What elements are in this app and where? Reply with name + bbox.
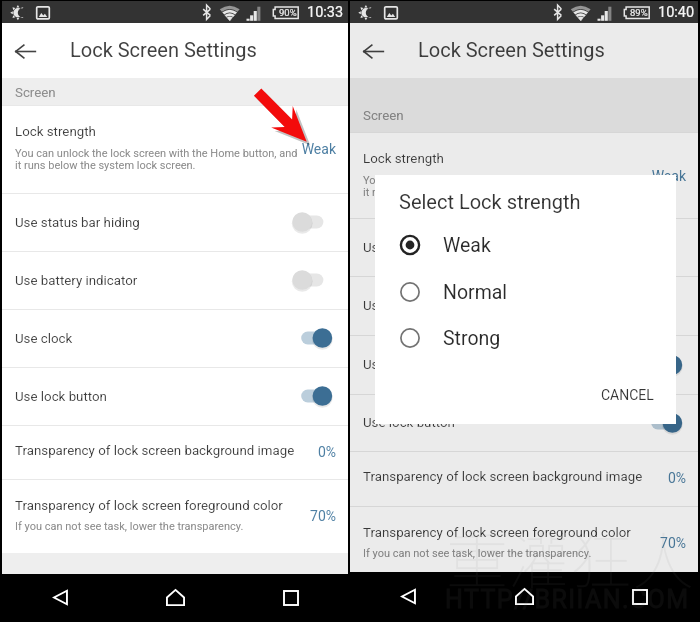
staticText: Use clock [15,331,73,347]
button[interactable]: Weak [385,227,665,263]
button[interactable] [2,367,348,425]
button[interactable] [2,479,348,553]
staticText: Normal [443,281,508,304]
staticText: Use status bar hiding [15,215,140,231]
button[interactable] [350,451,698,506]
staticText: CANCEL [601,387,654,403]
staticText: Weak [268,141,336,157]
button[interactable]: Toggle off [648,293,692,319]
button[interactable] [350,394,698,451]
staticText: Transparency of lock screen foreground c… [363,525,631,541]
staticText: 70% [268,508,336,524]
staticText: 重灌狂人 [446,512,695,602]
staticText: Lock strength [363,151,444,167]
button[interactable] [350,276,698,335]
staticText: If you can not see task, lower the trans… [363,547,592,560]
button[interactable]: Toggle on [298,383,342,409]
button[interactable] [2,309,348,367]
button[interactable] [350,218,698,276]
button[interactable] [350,335,698,394]
staticText: 70% [618,535,686,551]
button[interactable]: Toggle on [648,410,692,436]
staticText: If you can not see task, lower the trans… [15,520,244,533]
button[interactable]: CANCEL [601,387,654,403]
staticText: Lock Screen Settings [70,38,257,61]
button[interactable] [2,193,348,251]
staticText: Use clock [363,357,421,373]
staticText: You can unlock the lock screen with the … [363,174,646,187]
staticText: it runs below the system lock screen. [363,186,544,199]
staticText: Transparency of lock screen foreground c… [15,498,283,514]
staticText: HTTP//BRIIAN.COM [445,585,690,614]
button[interactable]: Strong [385,320,665,356]
button[interactable]: Navigate up [358,36,388,66]
staticText: 0% [268,444,336,460]
staticText: Use battery indicator [15,273,138,289]
button[interactable]: Toggle on [648,352,692,378]
staticText: Use lock button [363,415,455,431]
button[interactable] [350,506,698,572]
button[interactable]: Back [2,574,118,621]
button[interactable]: Toggle off [648,234,692,260]
button[interactable]: Navigate up [10,36,40,66]
button[interactable]: Toggle off [298,209,342,235]
button[interactable] [2,425,348,479]
staticText: it runs below the system lock screen. [15,159,196,172]
staticText: 90% [279,7,297,18]
staticText: Use battery indicator [363,298,486,314]
staticText: Strong [443,327,501,350]
button[interactable]: Toggle off [298,267,342,293]
staticText: 89% [630,7,648,18]
staticText: 0% [618,470,686,486]
staticText: Lock Screen Settings [418,38,605,61]
staticText: Use lock button [15,389,107,405]
staticText: 10:33 [307,4,344,21]
button[interactable]: Home [118,574,233,621]
button[interactable]: Recent apps [582,572,698,621]
staticText: Use status bar hiding [363,240,488,256]
staticText: Weak [618,168,686,184]
staticText: Weak [443,234,491,257]
staticText: Select Lock strength [399,190,581,213]
button[interactable]: Toggle on [298,325,342,351]
button[interactable]: Recent apps [233,574,348,621]
staticText: Screen [363,108,404,124]
button[interactable] [2,251,348,309]
staticText: You can unlock the lock screen with the … [15,147,298,160]
button[interactable] [350,133,698,218]
staticText: 10:40 [658,4,695,21]
staticText: Transparency of lock screen background i… [15,443,295,459]
staticText: Screen [15,85,56,101]
button[interactable]: Back [350,572,466,621]
button[interactable]: Home [466,572,582,621]
staticText: Lock strength [15,124,96,140]
button[interactable]: Normal [385,274,665,310]
staticText: Transparency of lock screen background i… [363,469,643,485]
button[interactable] [2,106,348,193]
